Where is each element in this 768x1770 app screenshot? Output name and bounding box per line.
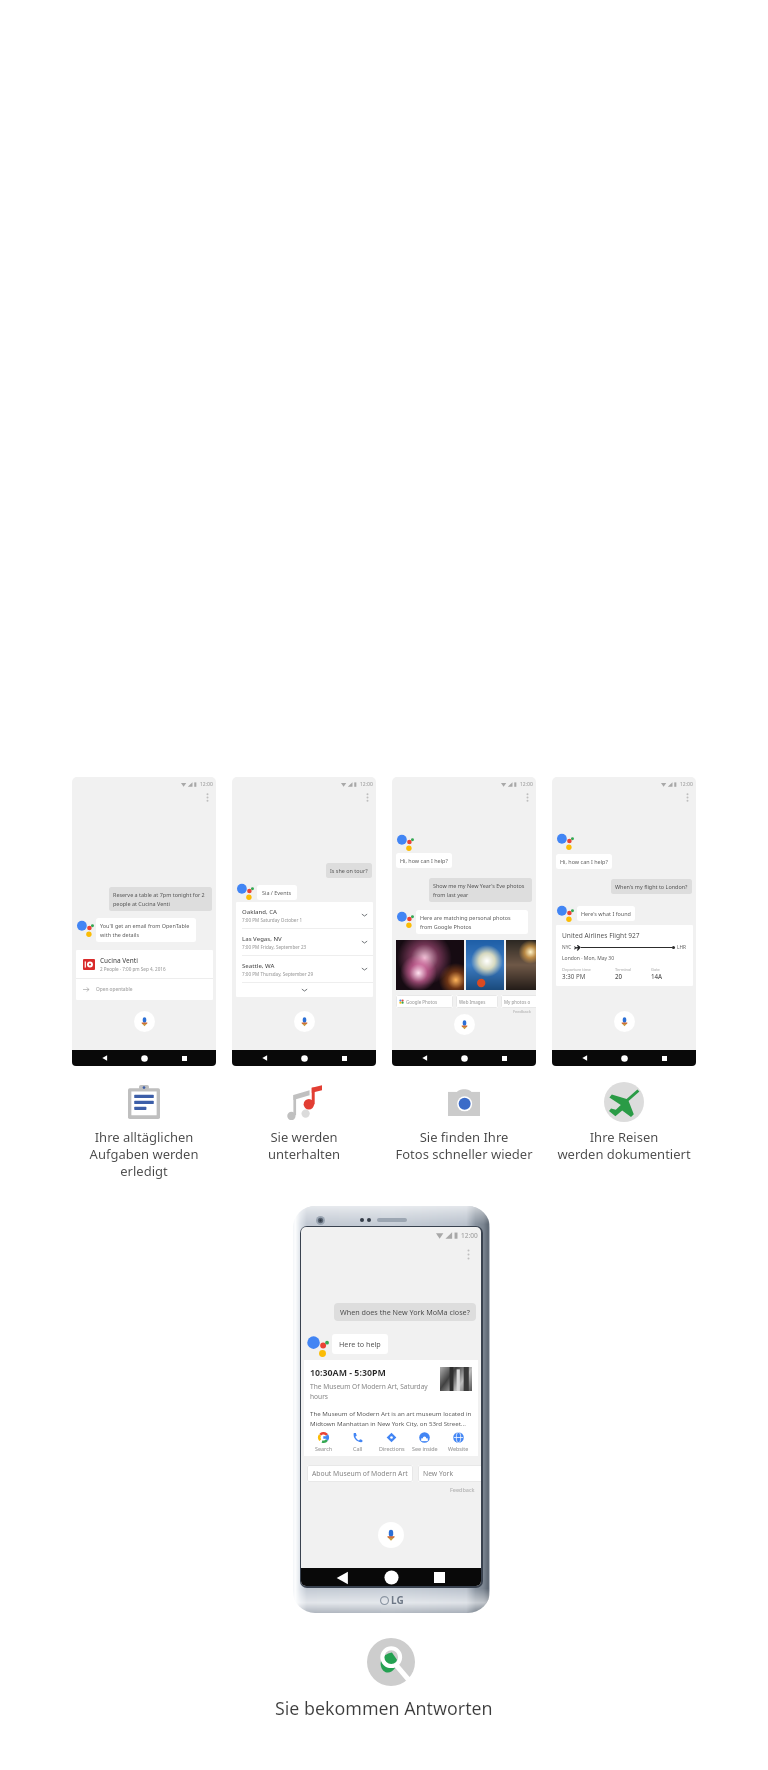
staticText: Sia / Events bbox=[262, 889, 292, 896]
button[interactable]: Home bbox=[384, 1570, 399, 1585]
button[interactable]: Recent apps bbox=[337, 1051, 351, 1065]
button[interactable]: Open opentable bbox=[76, 979, 213, 1000]
button[interactable]: Recent apps bbox=[657, 1051, 671, 1065]
staticText: 7:00 PM Friday, September 23 bbox=[242, 944, 307, 950]
button[interactable]: More options bbox=[203, 791, 212, 803]
button[interactable]: Web Images bbox=[456, 995, 498, 1008]
staticText: NYC bbox=[562, 944, 572, 951]
staticText: Sie finden Ihre Fotos schneller wieder bbox=[384, 1128, 544, 1163]
button[interactable]: Sie werden unterhalten bbox=[224, 1082, 384, 1163]
button[interactable]: Search bbox=[307, 1432, 340, 1452]
staticText: Departure time bbox=[562, 967, 591, 972]
staticText: 12:00 bbox=[520, 781, 533, 788]
staticText: Hi, how can I help? bbox=[560, 858, 608, 865]
button[interactable]: About Museum of Modern Art bbox=[307, 1465, 413, 1482]
staticText: New York museum bbox=[423, 1469, 481, 1478]
staticText: Feedback bbox=[513, 1009, 531, 1014]
staticText: London · Mon, May 30 bbox=[562, 955, 615, 962]
button[interactable]: Ihre alltäglichen Aufgaben werden erledi… bbox=[64, 1082, 224, 1180]
button[interactable]: Microphone bbox=[614, 1011, 635, 1032]
button[interactable] bbox=[236, 983, 373, 997]
button[interactable]: Ihre Reisen werden dokumentiert bbox=[544, 1082, 704, 1163]
staticText: Ihre alltäglichen Aufgaben werden erledi… bbox=[64, 1128, 224, 1180]
staticText: 3:30 PM bbox=[562, 972, 586, 980]
staticText: 12:00 bbox=[461, 1231, 478, 1240]
button[interactable]: More options bbox=[463, 1247, 474, 1262]
staticText: The Museum of Modern Art is an art museu… bbox=[310, 1409, 472, 1428]
button[interactable]: Sie finden Ihre Fotos schneller wieder bbox=[384, 1082, 544, 1163]
button[interactable]: Microphone bbox=[378, 1522, 404, 1548]
button[interactable]: See inside bbox=[408, 1432, 441, 1452]
button[interactable]: Microphone bbox=[294, 1011, 315, 1032]
staticText: Call bbox=[353, 1445, 363, 1452]
staticText: Here are matching personal photos from G… bbox=[420, 914, 524, 930]
button[interactable]: Microphone bbox=[134, 1011, 155, 1032]
button[interactable]: Back bbox=[578, 1051, 592, 1065]
button[interactable]: Home bbox=[617, 1051, 631, 1065]
staticText: Open opentable bbox=[96, 986, 133, 993]
staticText: When does the New York MoMa close? bbox=[340, 1307, 470, 1317]
staticText: When's my flight to London? bbox=[615, 883, 688, 890]
staticText: 2 People · 7:00 pm Sep 4, 2016 bbox=[100, 966, 166, 972]
button[interactable]: More options bbox=[683, 791, 692, 803]
staticText: Seattle, WA bbox=[242, 962, 275, 970]
staticText: 20 bbox=[615, 972, 623, 980]
staticText: Reserve a table at 7pm tonight for 2 peo… bbox=[113, 891, 208, 907]
staticText: Hi, how can I help? bbox=[400, 857, 448, 864]
button[interactable]: Microphone bbox=[454, 1014, 475, 1035]
staticText: Show me my New Year's Eve photos from la… bbox=[433, 882, 528, 898]
staticText: 7:00 PM Thursday, September 29 bbox=[242, 971, 314, 977]
staticText: Ihre Reisen werden dokumentiert bbox=[544, 1128, 704, 1163]
staticText: 10:30AM - 5:30PM bbox=[310, 1367, 386, 1379]
staticText: 14A bbox=[651, 972, 663, 980]
staticText: Here's what I found bbox=[581, 910, 631, 917]
button[interactable]: Back bbox=[98, 1051, 112, 1065]
button[interactable]: Recent apps bbox=[177, 1051, 191, 1065]
staticText: See inside bbox=[412, 1445, 438, 1452]
button[interactable]: Call bbox=[341, 1432, 374, 1452]
button[interactable]: Home bbox=[457, 1051, 471, 1065]
staticText: Las Vegas, NV bbox=[242, 935, 282, 943]
button[interactable]: More options bbox=[523, 791, 532, 803]
button[interactable]: Recent apps bbox=[432, 1570, 447, 1585]
staticText: Sie bekommen Antworten bbox=[275, 1696, 493, 1720]
button[interactable]: Oakland, CA bbox=[236, 902, 373, 928]
staticText: 12:00 bbox=[200, 781, 213, 788]
staticText: Here to help bbox=[339, 1339, 381, 1349]
staticText: Cucina Venti bbox=[100, 956, 138, 965]
staticText: Oakland, CA bbox=[242, 908, 277, 916]
button[interactable]: Website bbox=[442, 1432, 475, 1452]
button[interactable]: Las Vegas, NV bbox=[236, 929, 373, 955]
staticText: The Museum Of Modern Art, Saturday hours bbox=[310, 1382, 437, 1401]
button[interactable]: Back bbox=[418, 1051, 432, 1065]
button[interactable]: More options bbox=[363, 791, 372, 803]
staticText: Website bbox=[448, 1445, 469, 1452]
button[interactable]: Directions bbox=[375, 1432, 408, 1452]
staticText: Sie werden unterhalten bbox=[224, 1128, 384, 1163]
button[interactable]: My photos o bbox=[501, 995, 536, 1008]
button[interactable]: Recent apps bbox=[497, 1051, 511, 1065]
staticText: You'll get an email from OpenTable with … bbox=[100, 922, 192, 938]
button[interactable]: Google Photos bbox=[396, 995, 453, 1008]
staticText: LHR bbox=[677, 944, 687, 951]
staticText: Web Images bbox=[459, 999, 486, 1005]
staticText: 12:00 bbox=[680, 781, 693, 788]
staticText: Search bbox=[315, 1445, 333, 1452]
staticText: Google Photos bbox=[406, 999, 438, 1005]
staticText: About Museum of Modern Art bbox=[312, 1469, 408, 1478]
button[interactable]: Seattle, WA bbox=[236, 956, 373, 982]
button[interactable]: Back bbox=[258, 1051, 272, 1065]
staticText: United Airlines Flight 927 bbox=[562, 931, 640, 940]
staticText: Directions bbox=[379, 1445, 405, 1452]
staticText: Gate bbox=[651, 967, 660, 972]
staticText: LG bbox=[391, 1593, 404, 1607]
staticText: 12:00 bbox=[360, 781, 373, 788]
staticText: My photos o bbox=[504, 999, 531, 1005]
staticText: Terminal bbox=[615, 967, 632, 972]
staticText: Is she on tour? bbox=[330, 867, 368, 874]
button[interactable]: Back bbox=[335, 1570, 350, 1585]
staticText: 7:00 PM Saturday October 1 bbox=[242, 917, 303, 923]
button[interactable]: Home bbox=[297, 1051, 311, 1065]
button[interactable]: Home bbox=[137, 1051, 151, 1065]
button[interactable]: New York museum bbox=[418, 1465, 481, 1482]
